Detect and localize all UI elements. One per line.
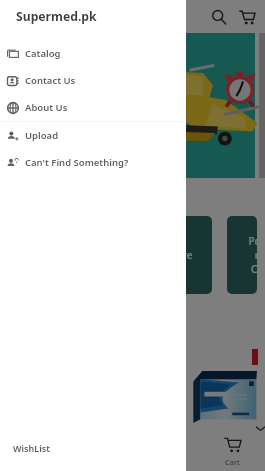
button[interactable]: Personal Care <box>227 216 257 294</box>
button[interactable]: Search <box>205 3 233 31</box>
staticText: Contact Us <box>25 74 76 87</box>
staticText: WishList <box>13 442 50 454</box>
button[interactable]: Home <box>0 431 67 471</box>
button[interactable] <box>8 33 255 178</box>
staticText: Cart <box>225 457 240 467</box>
staticText: Can't Find Something? <box>25 156 129 169</box>
button[interactable]: Offers <box>133 431 199 471</box>
staticText: Upload <box>25 129 59 142</box>
button[interactable]: Cart <box>233 3 261 31</box>
button[interactable]: Cart <box>199 431 265 471</box>
button[interactable]: Upload <box>0 122 186 149</box>
staticText: Supermed.pk <box>16 8 97 25</box>
button[interactable]: Healthcare <box>120 216 212 294</box>
staticText: About Us <box>25 101 68 114</box>
staticText: Catalog <box>25 47 61 60</box>
staticText: Personal Care <box>247 234 257 276</box>
button[interactable]: Can't Find Something? <box>0 149 186 176</box>
button[interactable]: Contact Us <box>0 67 186 94</box>
button[interactable]: About Us <box>0 94 186 121</box>
button[interactable]: Catalog <box>0 40 186 67</box>
button[interactable]: WishList <box>0 430 186 471</box>
staticText: Healthcare <box>140 248 193 262</box>
